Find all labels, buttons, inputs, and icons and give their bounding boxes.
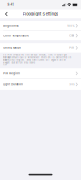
button[interactable]: Color Temperature: [0, 31, 81, 40]
staticText: light duration you have set.: [3, 61, 35, 67]
staticText: Floodlight Settings: [23, 12, 58, 16]
staticText: PIR: [69, 46, 74, 49]
staticText: 9:41: [7, 3, 13, 6]
button[interactable]: Light Duration: [0, 79, 81, 90]
staticText: In PIR (Passive Infrared) mode, the floo…: [3, 53, 67, 59]
button[interactable]: Select Mode: [0, 43, 81, 53]
staticText: Color Temperature: [3, 34, 29, 37]
staticText: 100%: [67, 24, 74, 27]
staticText: PIR Region: [3, 72, 20, 75]
staticText: on automatically whenever motion is dete…: [3, 56, 71, 61]
staticText: selected region, and switches off again …: [3, 59, 66, 64]
staticText: Select Mode: [3, 46, 21, 49]
staticText: Light Duration: [3, 83, 23, 86]
staticText: Brightness: [3, 24, 18, 27]
button[interactable]: PIR Region: [0, 68, 81, 78]
staticText: Cool: [69, 34, 74, 37]
button[interactable]: Brightness: [0, 21, 81, 30]
staticText: 30s: [69, 83, 74, 86]
button[interactable]: Back: [0, 9, 11, 18]
